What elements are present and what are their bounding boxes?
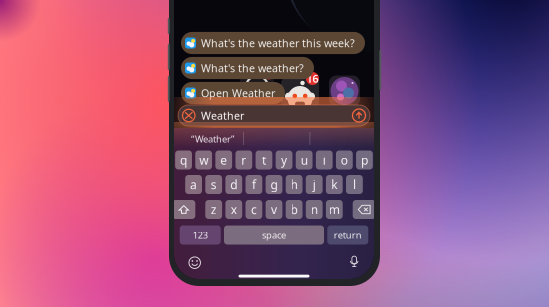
button[interactable]: space [224, 225, 324, 244]
button[interactable]: y [276, 150, 292, 169]
staticText: u [301, 152, 308, 168]
button[interactable]: e [215, 150, 232, 169]
button[interactable]: What's the weather this week? [181, 32, 365, 54]
staticText: g [270, 176, 277, 192]
staticText: space [262, 229, 286, 241]
button[interactable]: m [326, 200, 343, 219]
button[interactable]: 123 [180, 225, 221, 244]
button[interactable] [353, 200, 376, 219]
button[interactable]: u [296, 150, 313, 169]
button[interactable]: j [306, 175, 323, 194]
button[interactable]: a [185, 175, 202, 194]
staticText: b [291, 201, 298, 217]
staticText: j [313, 176, 316, 192]
button[interactable]: Open Weather [181, 82, 285, 104]
staticText: What's the weather? [201, 61, 304, 75]
staticText: m [329, 201, 340, 217]
staticText: f [252, 176, 256, 192]
button[interactable]: What's the weather? [181, 57, 314, 79]
staticText: r [241, 152, 246, 168]
staticText: c [251, 201, 257, 217]
button[interactable]: g [266, 175, 282, 194]
button[interactable]: z [205, 200, 222, 219]
button[interactable]: r [235, 150, 252, 169]
button[interactable]: d [225, 175, 242, 194]
button[interactable]: s [205, 175, 222, 194]
staticText: k [331, 176, 337, 192]
button[interactable]: Emoji keyboard [189, 257, 200, 268]
staticText: a [190, 176, 197, 192]
staticText: i [323, 152, 326, 168]
button[interactable]: v [266, 200, 282, 219]
staticText: t [262, 152, 266, 168]
button[interactable]: n [306, 200, 323, 219]
button[interactable]: l [346, 175, 363, 194]
button[interactable]: return [327, 225, 368, 244]
staticText: h [291, 176, 298, 192]
button[interactable]: w [195, 150, 212, 169]
staticText: e [220, 152, 227, 168]
button[interactable]: x [225, 200, 242, 219]
button[interactable]: f [245, 175, 262, 194]
staticText: z [211, 201, 217, 217]
staticText: y [281, 152, 287, 168]
staticText: w [199, 152, 208, 168]
staticText: return [334, 229, 362, 241]
staticText: Weather [201, 108, 244, 123]
staticText: p [361, 152, 368, 168]
staticText: o [341, 152, 348, 168]
button[interactable]: k [326, 175, 343, 194]
button[interactable]: b [286, 200, 302, 219]
button[interactable]: t [255, 150, 272, 169]
button[interactable]: o [336, 150, 353, 169]
staticText: v [271, 201, 277, 217]
staticText: Open Weather [201, 86, 275, 100]
button[interactable]: p [356, 150, 373, 169]
staticText: l [353, 176, 356, 192]
staticText: s [211, 176, 217, 192]
button[interactable]: q [175, 150, 192, 169]
button[interactable]: i [316, 150, 333, 169]
button[interactable] [172, 200, 195, 219]
staticText: “Weather” [191, 133, 234, 145]
button[interactable]: Weather [178, 105, 370, 126]
staticText: q [180, 152, 187, 168]
staticText: x [231, 201, 237, 217]
staticText: n [311, 201, 318, 217]
staticText: 16 [306, 71, 318, 86]
button[interactable]: Dictation [348, 255, 360, 269]
staticText: What's the weather this week? [201, 36, 355, 50]
button[interactable]: c [245, 200, 262, 219]
button[interactable]: h [286, 175, 302, 194]
staticText: d [230, 176, 237, 192]
staticText: 123 [193, 229, 208, 241]
